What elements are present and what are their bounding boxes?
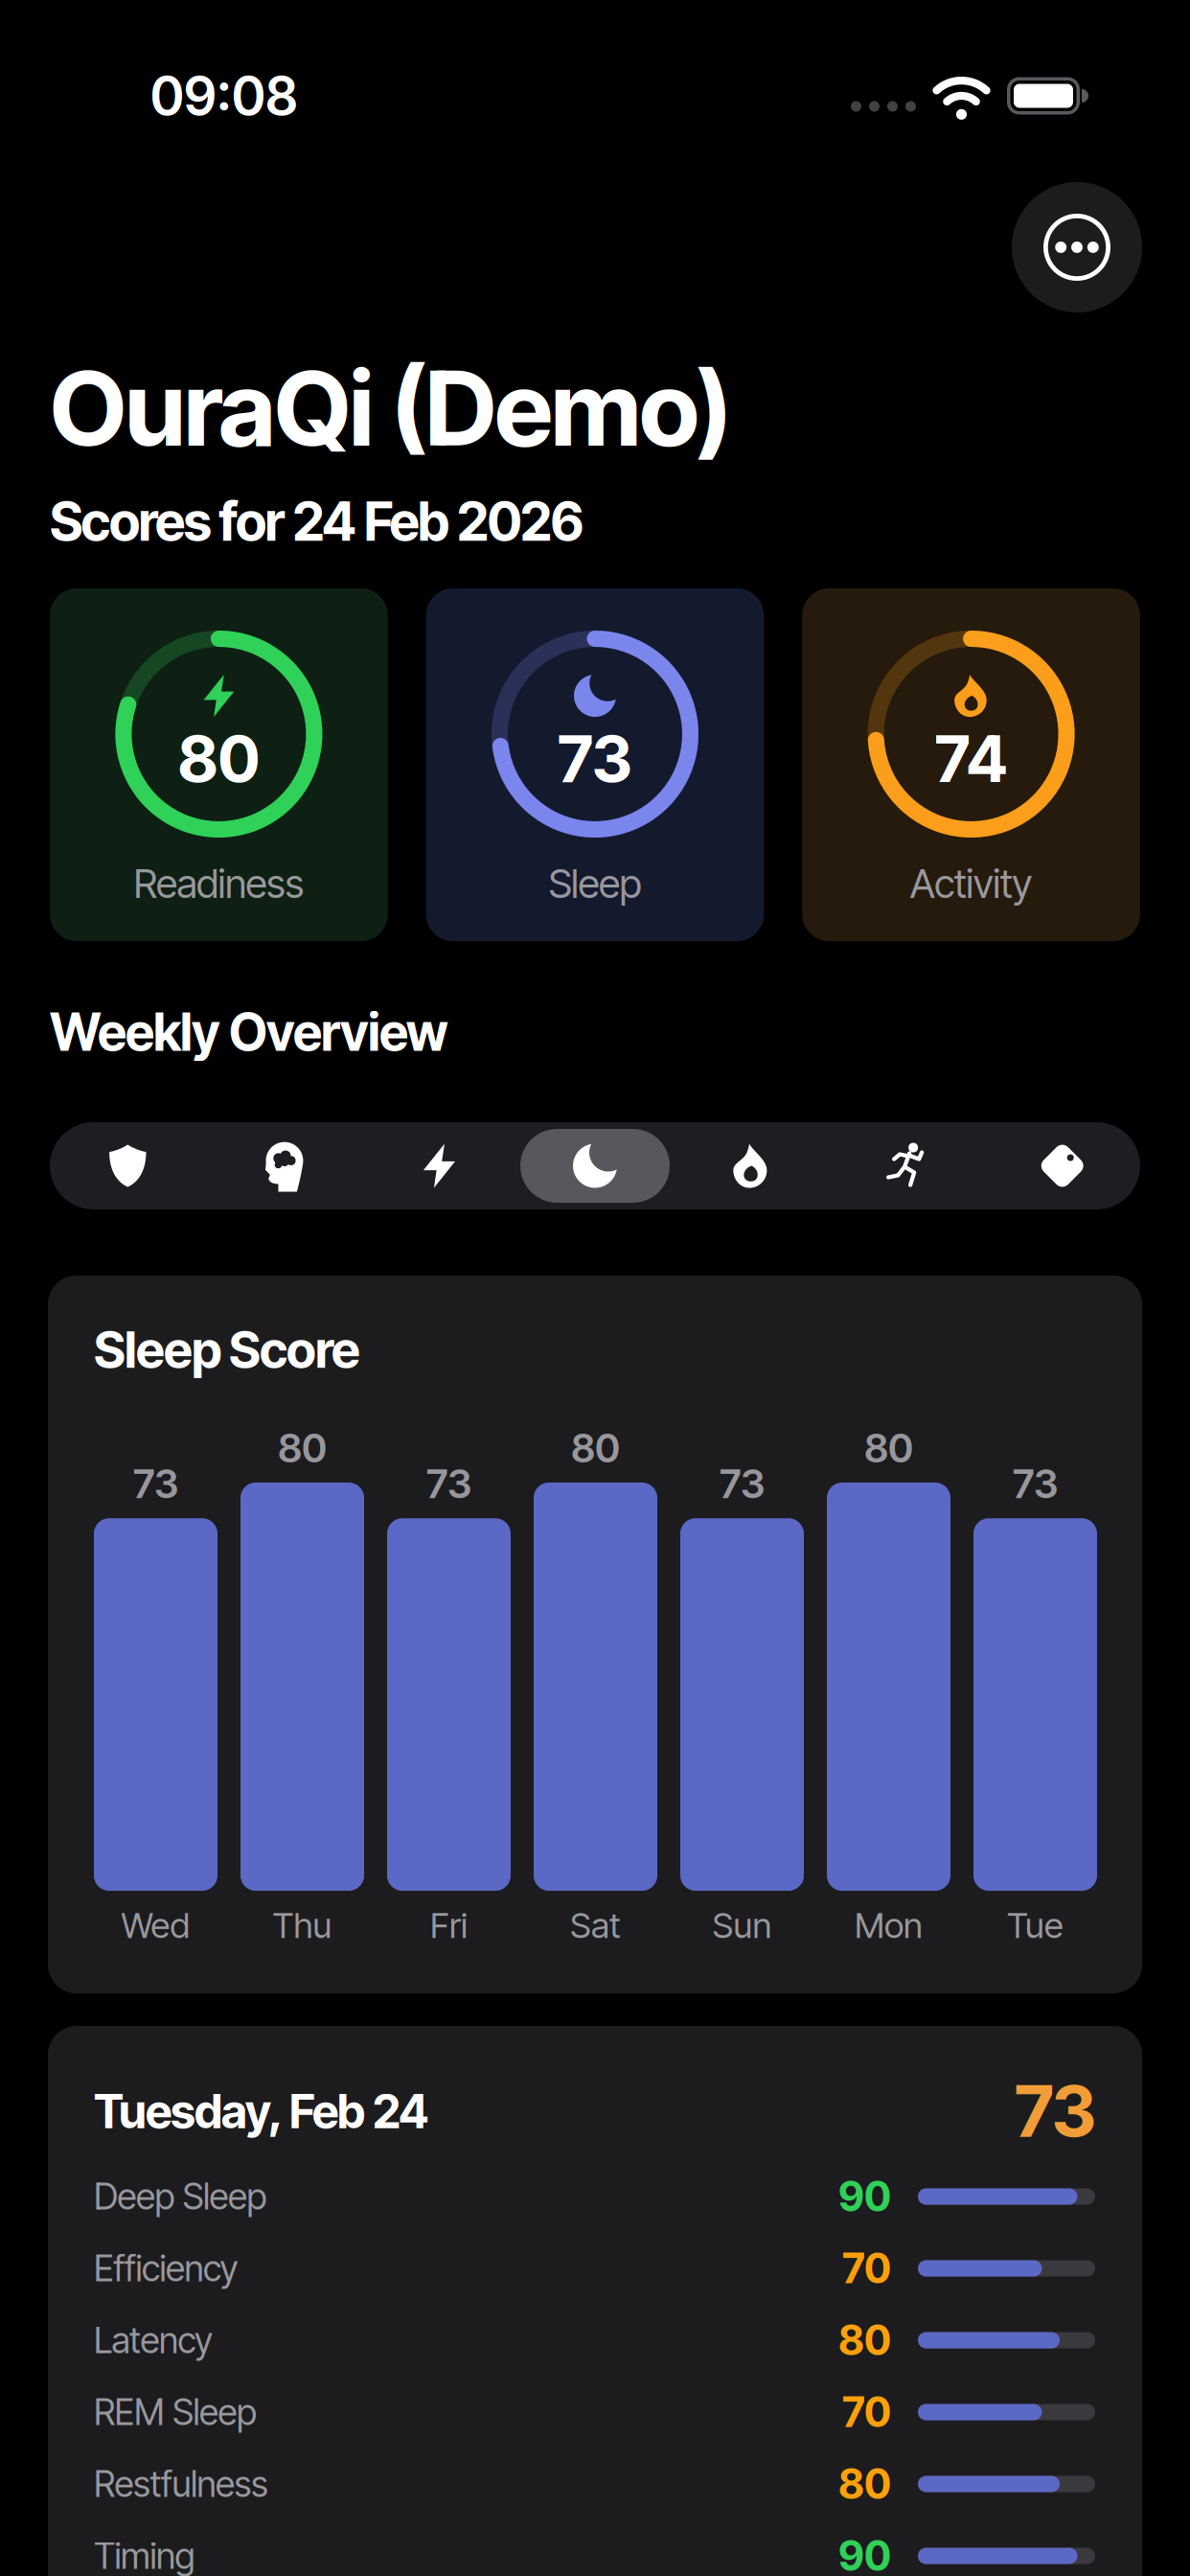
staticText: Timing [94, 2534, 195, 2576]
staticText: Restfulness [94, 2462, 268, 2506]
staticText: Mon [855, 1904, 923, 1947]
staticText: 90 [838, 2172, 891, 2221]
button[interactable]: Workouts [829, 1122, 984, 1209]
staticText: 80 [571, 1424, 620, 1472]
staticText: Sleep [549, 860, 641, 908]
button[interactable]: Sleep [517, 1122, 673, 1209]
staticText: Scores for 24 Feb 2026 [50, 489, 584, 553]
staticText: 70 [842, 2387, 891, 2437]
staticText: 80 [838, 2316, 891, 2365]
staticText: 70 [842, 2244, 891, 2293]
staticText: 80 [278, 1424, 327, 1472]
staticText: Weekly Overview [50, 1001, 448, 1063]
staticText: Wed [121, 1904, 190, 1947]
button[interactable]: Resilience [50, 1122, 206, 1209]
staticText: REM Sleep [94, 2390, 257, 2434]
staticText: 73 [133, 1460, 178, 1508]
staticText: Readiness [134, 860, 304, 908]
staticText: 74 [935, 720, 1008, 798]
staticText: Tuesday, Feb 24 [94, 2083, 428, 2139]
button[interactable]: More options [1012, 182, 1142, 312]
staticText: 90 [838, 2531, 891, 2576]
staticText: 73 [1013, 1460, 1058, 1508]
staticText: Tue [1007, 1904, 1064, 1947]
staticText: 73 [558, 720, 632, 798]
button[interactable]: Readiness [361, 1122, 517, 1209]
staticText: 73 [720, 1460, 765, 1508]
staticText: 80 [864, 1424, 913, 1472]
staticText: 73 [426, 1460, 471, 1508]
staticText: OuraQi (Demo) [50, 346, 732, 470]
staticText: Deep Sleep [94, 2175, 267, 2218]
staticText: 80 [838, 2459, 891, 2509]
staticText: Latency [94, 2319, 213, 2362]
staticText: 80 [178, 720, 260, 798]
staticText: Sat [570, 1904, 621, 1947]
staticText: Sun [712, 1904, 772, 1947]
staticText: 73 [1015, 2069, 1096, 2154]
button[interactable]: Stress [206, 1122, 361, 1209]
staticText: 09:08 [150, 64, 298, 128]
staticText: Fri [430, 1904, 468, 1947]
staticText: Efficiency [94, 2247, 238, 2290]
button[interactable]: Activity [673, 1122, 829, 1209]
staticText: Activity [910, 860, 1032, 908]
button[interactable]: Tags [984, 1122, 1140, 1209]
staticText: Thu [273, 1904, 332, 1947]
staticText: Sleep Score [94, 1319, 360, 1380]
